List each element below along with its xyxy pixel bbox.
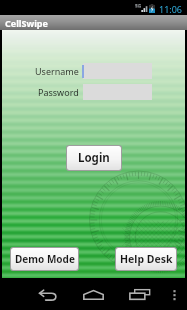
staticText: CellSwipe	[5, 17, 48, 29]
staticText: Login	[78, 150, 110, 166]
staticText: Help Desk	[120, 252, 173, 266]
button[interactable]: Back	[31, 278, 64, 310]
staticText: Password	[38, 86, 79, 98]
button[interactable]: Login	[67, 146, 121, 170]
button[interactable]: Home	[76, 278, 111, 310]
button[interactable]	[83, 63, 152, 79]
staticText: Username	[35, 65, 79, 77]
button[interactable]: Recents	[122, 278, 158, 310]
staticText: Demo Mode	[15, 252, 75, 266]
button[interactable]: Demo Mode	[11, 248, 78, 270]
button[interactable]: More options	[164, 278, 185, 310]
button[interactable]: Help Desk	[116, 248, 176, 270]
staticText: 11:06	[159, 3, 183, 15]
